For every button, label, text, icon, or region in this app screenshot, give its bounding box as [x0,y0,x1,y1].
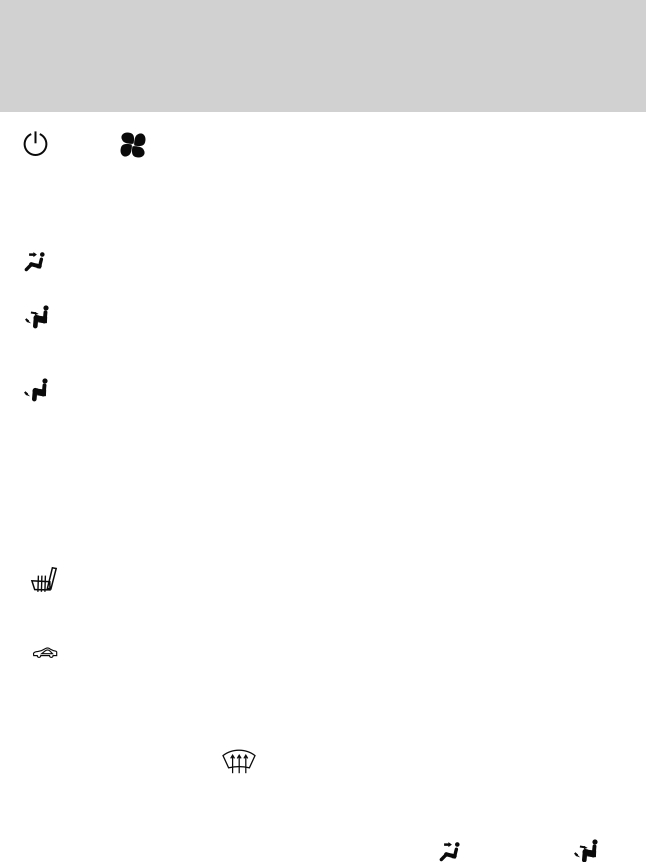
button[interactable]: Rear body airflow [574,838,598,862]
button[interactable]: Floor airflow [24,377,48,401]
button[interactable]: Face airflow [24,250,48,274]
button[interactable]: Rear face airflow [439,840,463,862]
button[interactable]: Power [25,130,47,157]
button[interactable]: Blower fan [120,132,146,158]
button[interactable]: Heated seat [31,567,57,593]
button[interactable]: Body airflow [25,304,49,328]
button[interactable]: Vehicle [32,644,57,657]
button[interactable]: Rear defroster [222,748,256,774]
